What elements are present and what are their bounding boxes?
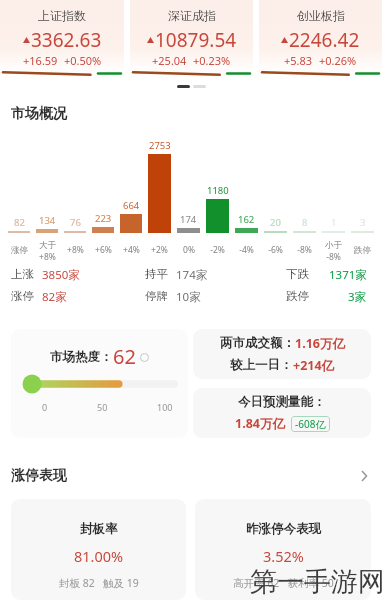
staticText: -4% — [239, 244, 254, 256]
staticText: 3家 — [348, 289, 367, 304]
staticText: 81.00% — [74, 546, 124, 566]
staticText: 高开率 62 获利率 50 — [233, 576, 334, 590]
staticText: 小于 — [325, 240, 342, 251]
button[interactable]: 市场热度： — [11, 329, 188, 438]
staticText: 82 — [14, 216, 25, 229]
staticText: 今日预测量能： — [238, 394, 326, 410]
staticText: -8% — [297, 244, 312, 256]
staticText: 下跌 — [286, 267, 309, 281]
staticText: 涨停 — [11, 289, 34, 303]
staticText: 3362.63 — [31, 27, 102, 53]
staticText: 深证成指 — [168, 8, 216, 23]
staticText: 50 — [97, 401, 108, 413]
staticText: 跌停 — [286, 289, 309, 303]
staticText: 创业板指 — [297, 8, 345, 23]
staticText: +2% — [151, 244, 168, 256]
staticText: 市场概况 — [11, 105, 67, 123]
button[interactable]: 两市成交额： — [193, 329, 371, 379]
staticText: 134 — [39, 214, 56, 227]
staticText: +8% — [67, 244, 84, 256]
staticText: 3 — [360, 216, 366, 229]
staticText: 76 — [70, 216, 81, 229]
staticText: 223 — [95, 212, 112, 225]
staticText: 2753 — [149, 139, 171, 152]
staticText: 10家 — [176, 289, 201, 304]
staticText: +214亿 — [293, 357, 335, 374]
staticText: 174家 — [176, 267, 208, 282]
staticText: -2% — [210, 244, 225, 256]
button[interactable]: 创业板指 — [259, 0, 382, 80]
staticText: +8% — [39, 251, 56, 260]
staticText: 1 — [331, 216, 337, 229]
staticText: 涨停表现 — [11, 467, 67, 485]
staticText: +25.04 — [152, 53, 187, 68]
staticText: 162 — [238, 213, 255, 226]
staticText: 1180 — [207, 184, 229, 197]
staticText: 上涨 — [11, 267, 34, 281]
staticText: 174 — [180, 213, 197, 226]
button[interactable]: 深证成指 — [130, 0, 253, 80]
staticText: 82家 — [42, 289, 67, 304]
button[interactable]: 昨涨停今表现 — [195, 499, 371, 600]
staticText: +0.23% — [193, 53, 231, 68]
staticText: +0.50% — [64, 53, 102, 68]
staticText: 62 — [113, 343, 136, 370]
staticText: +6% — [95, 244, 112, 256]
staticText: 大于 — [39, 240, 56, 251]
staticText: +5.83 — [284, 53, 313, 68]
staticText: 10879.54 — [155, 27, 237, 53]
staticText: 持平 — [145, 267, 168, 281]
staticText: 0% — [183, 244, 195, 256]
staticText: 上证指数 — [38, 8, 86, 23]
staticText: 2246.42 — [289, 27, 360, 53]
staticText: 跌停 — [354, 245, 371, 256]
staticText: 两市成交额： — [220, 335, 295, 351]
other: 更多涨停表现 — [361, 470, 368, 482]
staticText: 0 — [42, 401, 48, 413]
staticText: 1371家 — [329, 267, 367, 282]
button[interactable]: 封板率 — [11, 499, 186, 600]
staticText: 1.16万亿 — [295, 335, 345, 352]
staticText: 664 — [123, 199, 140, 212]
staticText: 涨停 — [11, 245, 28, 256]
staticText: 第一手游网 — [250, 565, 382, 599]
staticText: -608亿 — [295, 417, 326, 431]
staticText: +4% — [123, 244, 140, 256]
staticText: 停牌 — [145, 289, 168, 303]
button[interactable]: 今日预测量能： — [193, 388, 371, 438]
staticText: 市场热度： — [50, 349, 113, 365]
staticText: 封板率 — [80, 521, 118, 537]
staticText: 20 — [270, 216, 281, 229]
button[interactable]: 上证指数 — [0, 0, 124, 80]
staticText: +0.26% — [319, 53, 357, 68]
staticText: 8 — [302, 216, 308, 229]
staticText: 1.84万亿 — [235, 415, 285, 432]
staticText: +16.59 — [23, 53, 58, 68]
staticText: -6% — [268, 244, 283, 256]
staticText: 昨涨停今表现 — [246, 521, 321, 537]
staticText: -8% — [326, 251, 341, 260]
staticText: 3850家 — [42, 267, 80, 282]
staticText: 100 — [157, 401, 173, 413]
staticText: 3.52% — [263, 546, 304, 566]
staticText: 封板 82 触及 19 — [59, 576, 139, 590]
staticText: 较上一日： — [230, 357, 293, 373]
button[interactable]: 涨停表现 — [0, 465, 382, 487]
